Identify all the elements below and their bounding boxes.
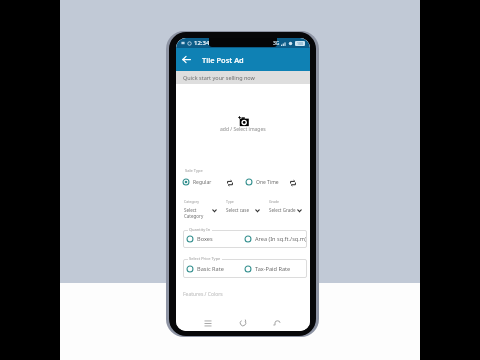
staticText: 12:34 (194, 39, 210, 47)
button[interactable]: Type (226, 199, 268, 213)
staticText: Area (In sq.ft./sq.m) (255, 235, 307, 243)
staticText: Select Category (184, 207, 211, 219)
button[interactable]: Tax-Paid Rate (244, 265, 291, 273)
staticText: 3G (273, 40, 280, 47)
staticText: Sale Type (185, 168, 203, 173)
staticText: Category (184, 199, 199, 204)
staticText: Regular (193, 179, 212, 186)
button[interactable]: Regular (182, 178, 212, 186)
staticText: Select Price Type (189, 256, 221, 261)
button[interactable]: Grade (269, 199, 309, 213)
staticText: Basic Rate (197, 265, 224, 273)
staticText: Features / Colors (183, 291, 223, 298)
button[interactable]: Home (236, 316, 249, 329)
staticText: Tax-Paid Rate (255, 265, 291, 273)
button[interactable]: Recent apps (201, 316, 214, 329)
button[interactable]: Back (270, 316, 283, 329)
staticText: Quantity In (189, 227, 211, 232)
staticText: Select Grade (269, 207, 296, 213)
staticText: Type (226, 199, 234, 204)
staticText: Tile Post Ad (202, 55, 244, 65)
button[interactable]: Basic Rate (186, 265, 224, 273)
button[interactable]: Boxes (186, 235, 213, 243)
button[interactable]: Back (176, 48, 196, 71)
staticText: Select case (226, 207, 250, 213)
button[interactable]: Area (In sq.ft./sq.m) (244, 235, 307, 243)
button[interactable]: Repeat (226, 179, 234, 187)
button[interactable]: One Time (245, 178, 279, 186)
staticText: 100 (297, 41, 304, 46)
staticText: Boxes (197, 235, 213, 243)
button[interactable]: Repeat (289, 179, 297, 187)
staticText: Quick start your selling now (183, 74, 255, 81)
button[interactable]: Category (184, 199, 226, 219)
staticText: One Time (256, 179, 279, 186)
staticText: Grade (269, 199, 280, 204)
staticText: add / Select images (220, 126, 266, 133)
button[interactable]: Add or select images (238, 116, 249, 127)
